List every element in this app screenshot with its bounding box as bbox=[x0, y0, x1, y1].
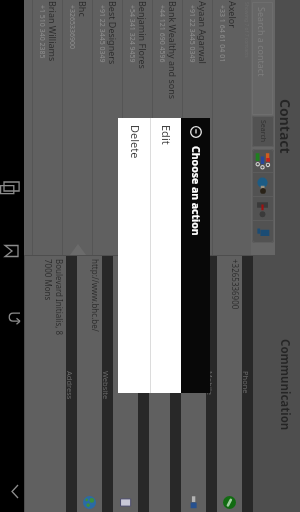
staticText: Choose an action bbox=[189, 146, 203, 236]
button[interactable]: Contacts bbox=[276, 96, 298, 156]
button[interactable]: Bhc bbox=[62, 0, 92, 255]
staticText: Website bbox=[101, 371, 111, 400]
staticText: +3265336900 bbox=[67, 5, 77, 50]
button[interactable]: +3265336900 bbox=[217, 256, 242, 512]
staticText: +1 510 340 2385 bbox=[37, 5, 47, 59]
staticText: +54 341 324 9459 bbox=[127, 5, 137, 63]
button[interactable]: Search a contact bbox=[252, 2, 273, 115]
staticText: Boulevard Initialis, 8 bbox=[54, 259, 65, 336]
button[interactable]: Back bbox=[0, 311, 24, 331]
staticText: http://www.bhc.be/ bbox=[90, 259, 101, 332]
button[interactable]: No mobile bbox=[181, 256, 206, 512]
button[interactable]: No fax bbox=[149, 256, 170, 512]
button[interactable]: Axelor bbox=[212, 0, 242, 255]
staticText: Contacts bbox=[273, 99, 295, 159]
staticText: +33 1 64 61 04 01 bbox=[217, 5, 227, 63]
button[interactable]: More options bbox=[0, 482, 24, 502]
staticText: Delete bbox=[128, 125, 143, 159]
button[interactable]: Brian Williams bbox=[32, 0, 62, 255]
button[interactable]: Communication bbox=[276, 336, 298, 432]
staticText: Bank Wealthy and sons bbox=[167, 1, 179, 100]
button[interactable]: Bank Wealthy and sons bbox=[152, 0, 182, 255]
staticText: Search bbox=[258, 120, 268, 143]
staticText: +91 22 3445 0349 bbox=[187, 5, 197, 63]
button[interactable]: Search bbox=[252, 116, 274, 147]
button[interactable]: Benjamin Flores bbox=[122, 0, 152, 255]
staticText: +3265336900 bbox=[230, 259, 241, 310]
button[interactable]: New contact bbox=[252, 149, 274, 173]
staticText: 7000 Mons bbox=[43, 259, 54, 301]
button[interactable]: Recents bbox=[0, 180, 24, 202]
button[interactable]: No email bbox=[113, 256, 138, 512]
staticText: Search a contact bbox=[256, 7, 268, 77]
staticText: Benjamin Flores bbox=[137, 1, 149, 69]
staticText: Bhc bbox=[77, 1, 89, 17]
button[interactable]: Import bbox=[252, 173, 274, 197]
staticText: +91 22 3445 0349 bbox=[97, 5, 107, 63]
staticText: Best Designers bbox=[107, 1, 119, 65]
staticText: Mobile bbox=[205, 371, 215, 396]
button[interactable]: Edit bbox=[151, 118, 181, 393]
staticText: Edit bbox=[159, 125, 174, 145]
staticText: Communication bbox=[277, 339, 293, 431]
button[interactable]: Boulevard Initialis, 8 bbox=[25, 256, 66, 512]
staticText: Ayaan Agarwal bbox=[197, 1, 209, 64]
button[interactable]: Export bbox=[252, 197, 274, 221]
button[interactable]: Delete bbox=[118, 118, 150, 393]
staticText: +44 121 690 4596 bbox=[157, 5, 167, 63]
staticText: Address bbox=[65, 371, 75, 400]
button[interactable]: Print bbox=[252, 221, 274, 243]
staticText: Phone bbox=[241, 371, 251, 394]
button[interactable]: Home bbox=[0, 244, 24, 268]
button[interactable]: http://www.bhc.be/ bbox=[77, 256, 102, 512]
button[interactable]: Ayaan Agarwal bbox=[182, 0, 212, 255]
button[interactable]: Best Designers bbox=[92, 0, 122, 255]
staticText: Axelor bbox=[227, 1, 239, 28]
staticText: Brian Williams bbox=[47, 1, 59, 62]
